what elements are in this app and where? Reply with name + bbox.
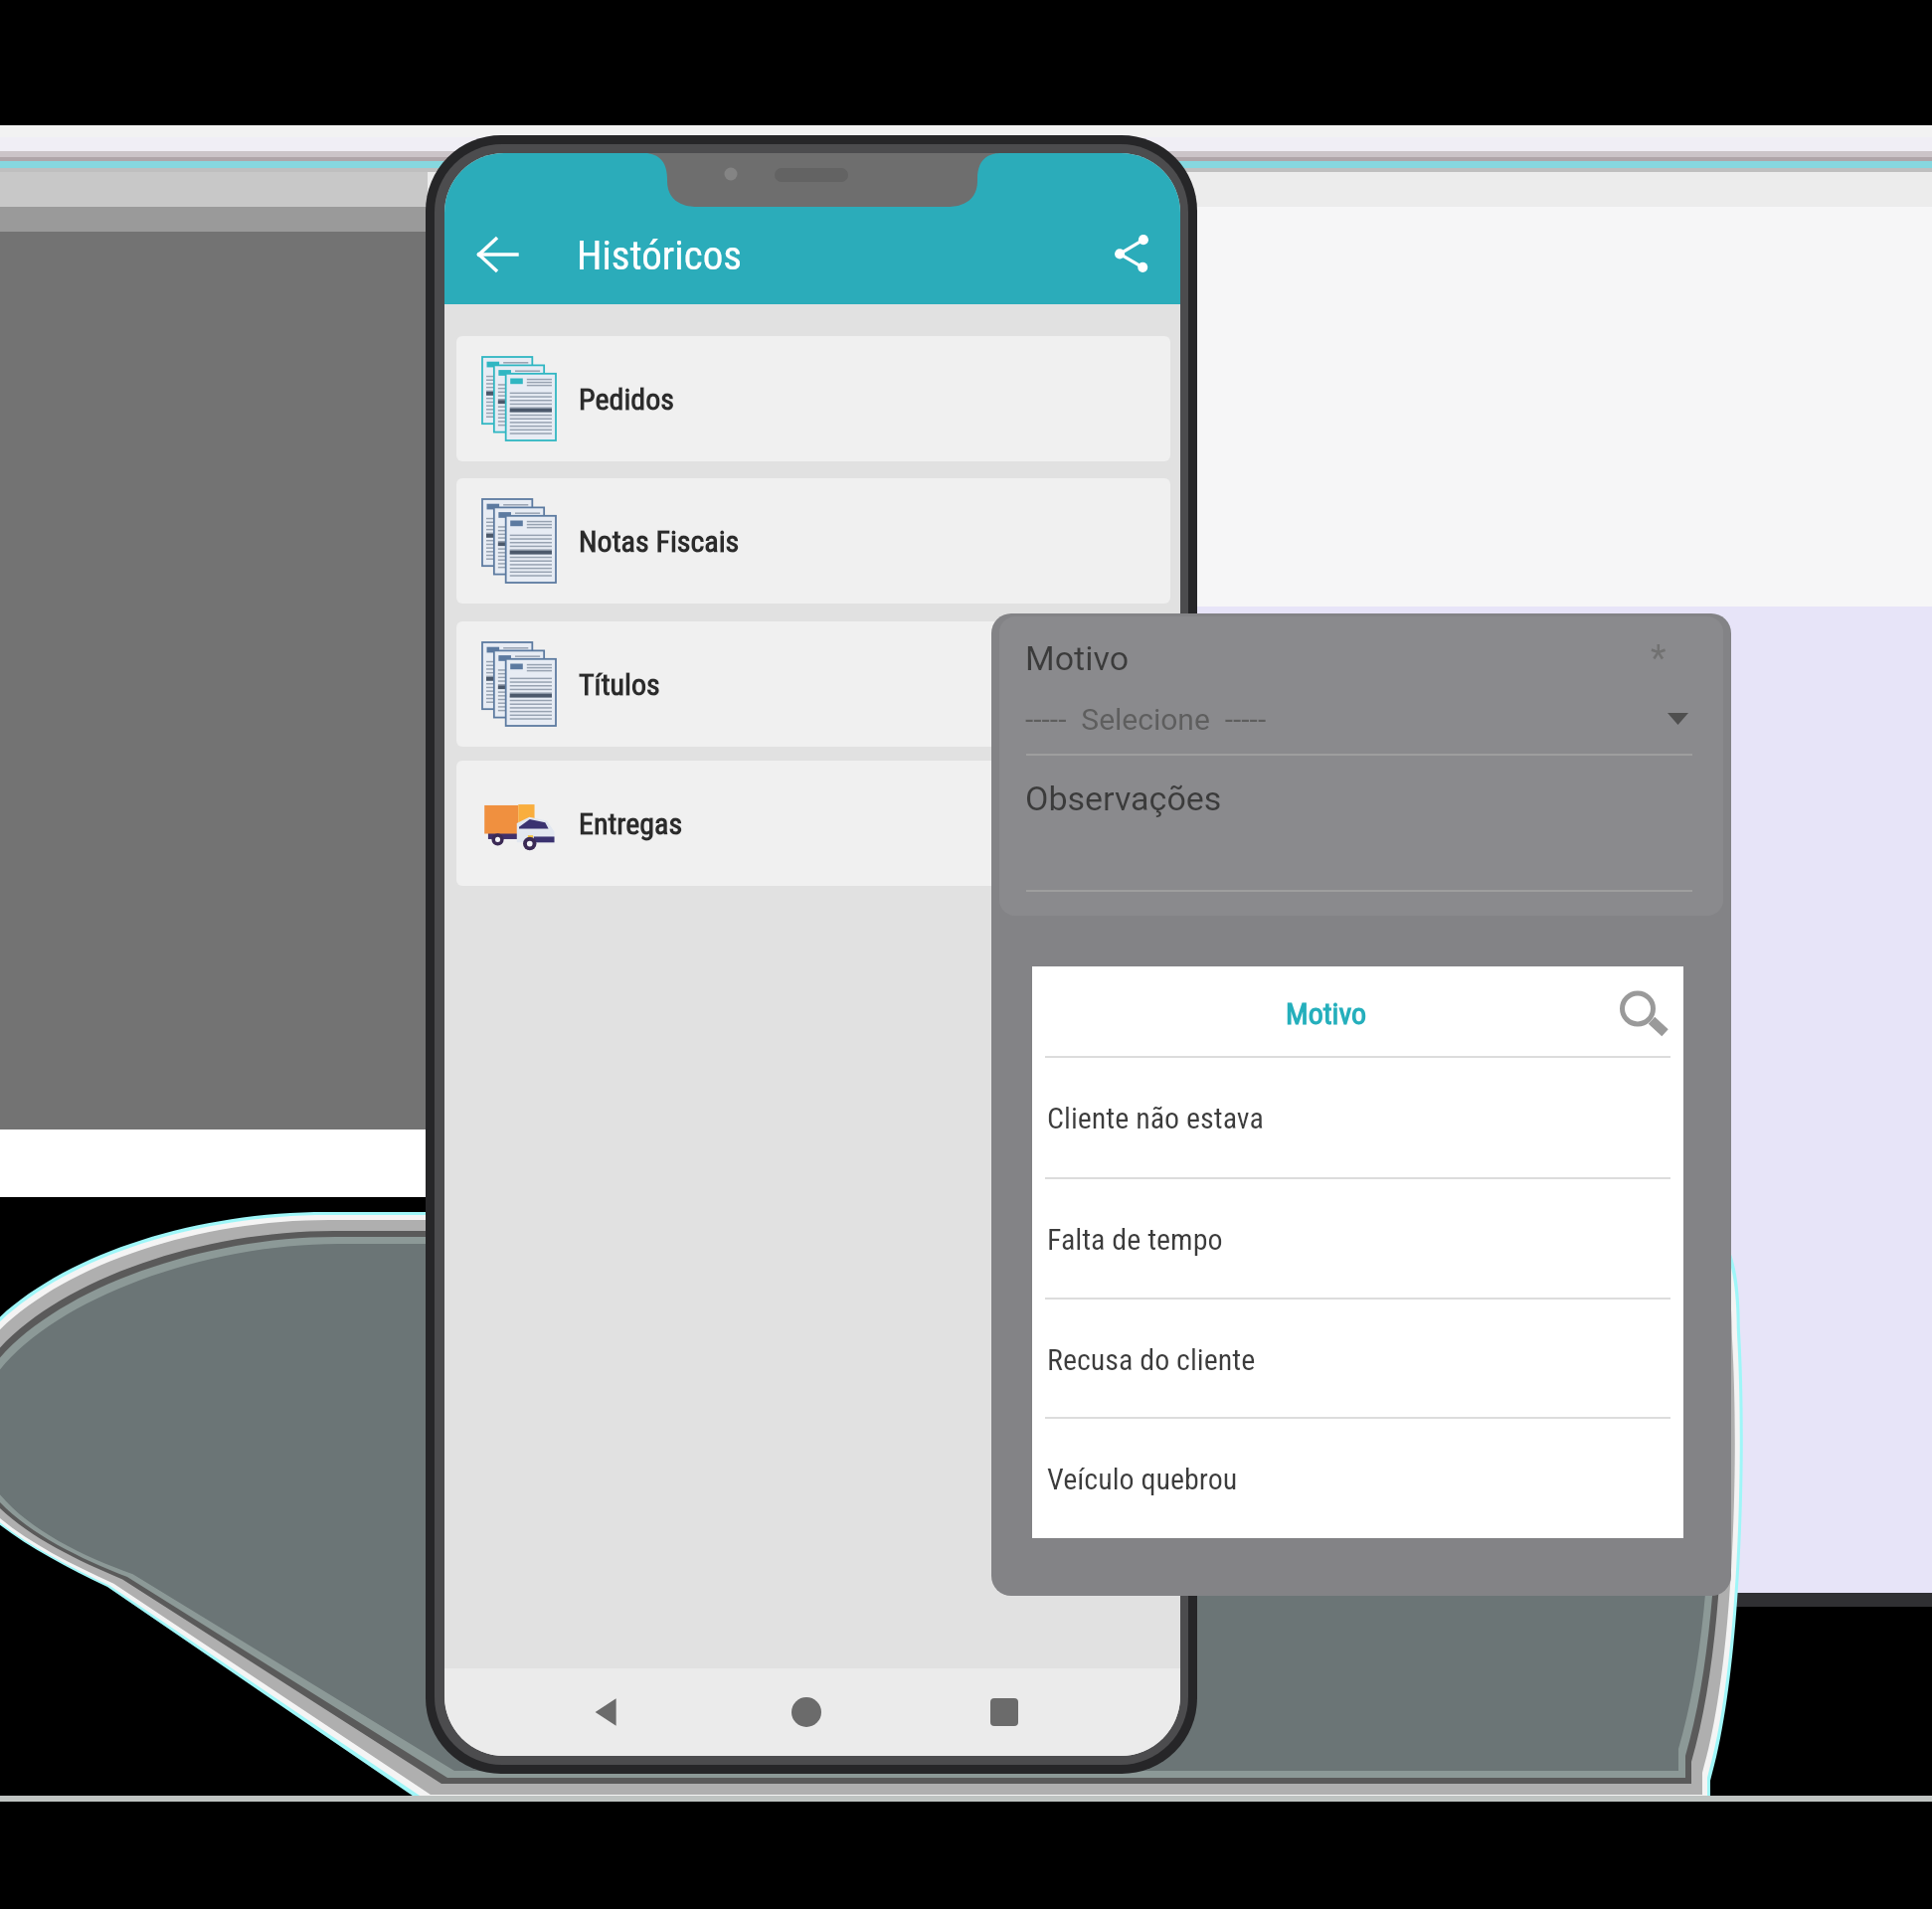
staticText: ----- Selecione ----- (1025, 702, 1267, 737)
button[interactable]: Cliente não estava (1032, 1058, 1683, 1177)
button[interactable]: Home (776, 1682, 837, 1742)
staticText: Históricos (577, 232, 742, 279)
staticText: Motivo (1025, 638, 1130, 678)
staticText: * (1651, 637, 1667, 679)
button[interactable]: Entregas (456, 761, 1170, 886)
staticText: Títulos (579, 667, 660, 702)
button[interactable]: Search (1611, 980, 1676, 1046)
staticText: Notas Fiscais (579, 524, 740, 559)
button[interactable]: Notas Fiscais (456, 478, 1170, 604)
button[interactable]: Recents (973, 1682, 1035, 1742)
button[interactable]: Títulos (456, 621, 1170, 747)
button[interactable]: Pedidos (456, 336, 1170, 461)
button[interactable]: Back (462, 227, 532, 282)
staticText: Falta de tempo (1047, 1222, 1223, 1257)
button[interactable]: Share (1098, 224, 1165, 283)
button[interactable]: Recusa do cliente (1032, 1300, 1683, 1419)
button[interactable]: Back (576, 1682, 637, 1742)
staticText: Veículo quebrou (1047, 1462, 1238, 1496)
staticText: Entregas (579, 806, 683, 841)
staticText: Recusa do cliente (1047, 1342, 1256, 1377)
button[interactable]: Veículo quebrou (1032, 1419, 1683, 1538)
staticText: Observações (1025, 779, 1222, 818)
staticText: Motivo (1286, 996, 1367, 1031)
staticText: Pedidos (579, 382, 674, 417)
button[interactable]: Falta de tempo (1032, 1179, 1683, 1299)
staticText: Cliente não estava (1047, 1101, 1264, 1135)
